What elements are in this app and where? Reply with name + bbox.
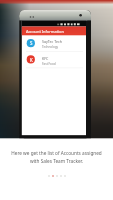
button[interactable]: S <box>22 35 86 51</box>
staticText: SayTec Tech <box>42 39 62 44</box>
staticText: Here we get the list of Accounts assigne… <box>7 150 106 164</box>
button[interactable]: K <box>22 52 86 68</box>
button[interactable]: Account Information <box>22 27 86 36</box>
staticText: K <box>30 57 33 63</box>
staticText: Fast Food <box>42 62 56 66</box>
staticText: Technology <box>42 45 59 49</box>
staticText: Account Information <box>26 29 64 34</box>
staticText: KFC <box>42 56 49 61</box>
staticText: S <box>30 40 33 46</box>
